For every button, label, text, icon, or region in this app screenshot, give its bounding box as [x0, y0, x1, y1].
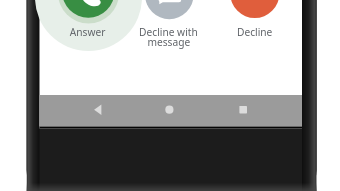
button[interactable]: Recent apps: [232, 100, 256, 120]
button[interactable]: Decline call: [230, 0, 280, 42]
button[interactable]: Back: [86, 100, 110, 120]
button[interactable]: Decline with message: [145, 0, 194, 52]
button[interactable]: Home: [158, 100, 182, 120]
button[interactable]: Answer call: [62, 0, 115, 42]
